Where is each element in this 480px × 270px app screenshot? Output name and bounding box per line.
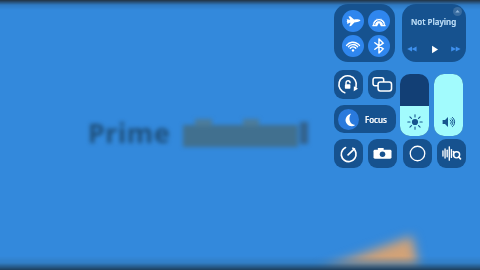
button[interactable]: Rotation lock bbox=[334, 70, 363, 99]
button[interactable]: Airplane mode bbox=[342, 10, 364, 32]
button[interactable]: Flashlight bbox=[403, 139, 432, 168]
staticText: Prime bbox=[88, 114, 171, 151]
button[interactable]: AirPlay bbox=[402, 4, 466, 62]
staticText: Focus bbox=[365, 114, 387, 125]
button[interactable]: Wi-Fi bbox=[342, 35, 364, 57]
button[interactable]: Previous track bbox=[406, 43, 418, 55]
button[interactable]: Volume bbox=[434, 74, 463, 136]
button[interactable]: Bluetooth bbox=[368, 35, 390, 57]
button[interactable]: Cellular data bbox=[368, 10, 390, 32]
button[interactable]: Play bbox=[429, 44, 440, 55]
button[interactable]: AirPlay bbox=[453, 7, 462, 16]
button[interactable]: Timer bbox=[334, 139, 363, 168]
button[interactable]: Focus bbox=[334, 105, 396, 133]
button[interactable]: Camera bbox=[368, 139, 397, 168]
button[interactable]: Screen mirroring bbox=[368, 70, 396, 99]
button[interactable]: Sound recognition bbox=[437, 139, 466, 168]
button[interactable]: Next track bbox=[450, 43, 462, 55]
button[interactable]: Brightness bbox=[400, 74, 429, 136]
staticText: Not Playing bbox=[411, 16, 457, 27]
